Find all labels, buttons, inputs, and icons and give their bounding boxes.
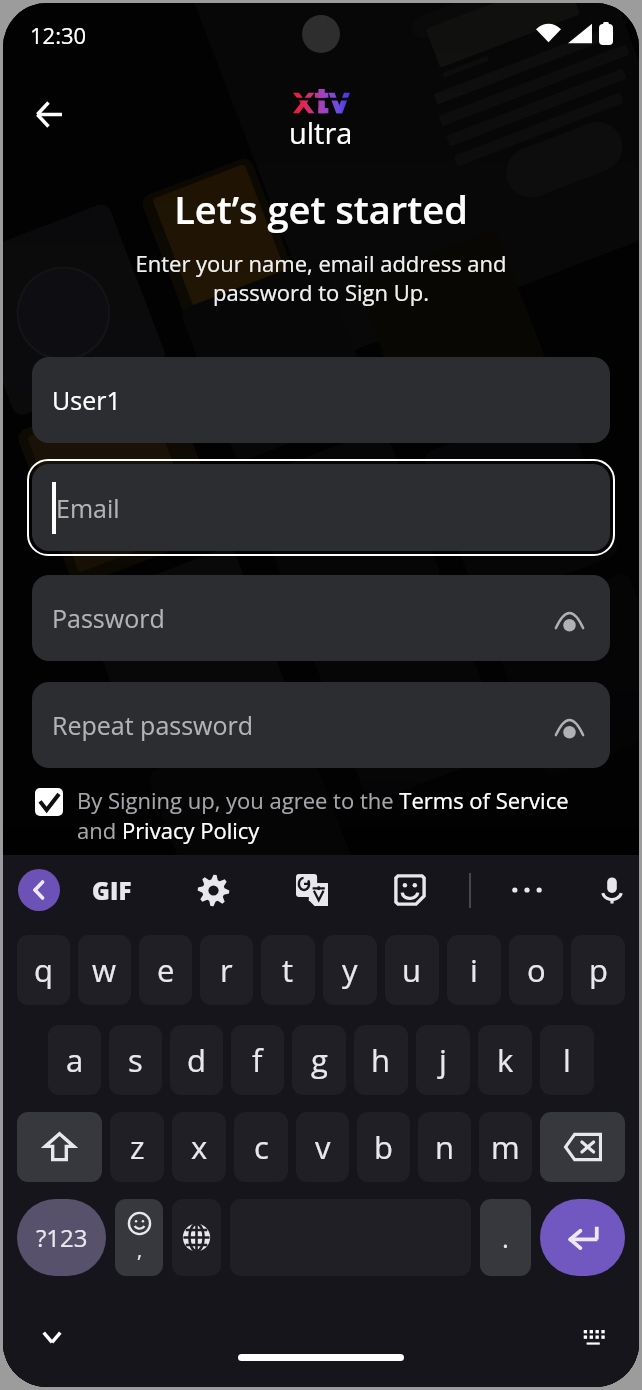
staticText: i (470, 949, 478, 991)
button[interactable]: m (479, 1112, 532, 1182)
staticText: e (157, 949, 175, 991)
staticText: n (435, 1126, 455, 1168)
staticText: d (187, 1039, 206, 1081)
staticText: User1 (52, 383, 121, 417)
button[interactable]: Repeat password (32, 682, 610, 768)
button[interactable]: h (354, 1025, 408, 1095)
button[interactable]: Settings (192, 869, 234, 911)
staticText: ultra (289, 113, 353, 152)
staticText: u (402, 949, 422, 991)
staticText: Repeat password (52, 708, 254, 742)
button[interactable]: q (17, 935, 70, 1005)
staticText: c (254, 1126, 269, 1168)
button[interactable]: ?123 (17, 1199, 106, 1276)
staticText: f (252, 1039, 263, 1081)
staticText: w (92, 949, 117, 991)
button[interactable]: Agree to terms (35, 788, 63, 816)
button[interactable]: Switch keyboard (577, 1319, 613, 1355)
button[interactable]: b (357, 1112, 410, 1182)
staticText: g (311, 1039, 328, 1081)
button[interactable]: f (231, 1025, 284, 1095)
button[interactable]: Email (32, 464, 610, 551)
staticText: GIF (92, 874, 132, 907)
button[interactable]: Translate (291, 869, 333, 911)
button[interactable]: Emoji (115, 1199, 163, 1276)
staticText: t (282, 949, 294, 991)
button[interactable]: x (172, 1112, 226, 1182)
button[interactable]: Enter (540, 1199, 625, 1276)
button[interactable]: User1 (32, 357, 610, 443)
button[interactable]: y (323, 935, 377, 1005)
button[interactable]: k (478, 1025, 532, 1095)
button[interactable]: r (200, 935, 253, 1005)
button[interactable]: Previous field (18, 869, 60, 911)
staticText: z (130, 1126, 145, 1168)
staticText: Email (56, 491, 120, 525)
staticText: s (128, 1039, 143, 1081)
button[interactable]: l (540, 1025, 594, 1095)
staticText: By Signing up, you agree to the Terms of… (77, 785, 593, 846)
staticText: v (315, 1126, 331, 1168)
button[interactable]: i (447, 935, 501, 1005)
button[interactable]: c (234, 1112, 288, 1182)
button[interactable]: Hide keyboard (34, 1319, 70, 1355)
staticText: Password (52, 601, 165, 635)
staticText: Enter your name, email address and passw… (3, 248, 639, 307)
staticText: 12:30 (30, 20, 87, 50)
button[interactable]: j (416, 1025, 470, 1095)
staticText: y (342, 949, 358, 991)
button[interactable]: n (418, 1112, 471, 1182)
button[interactable]: s (109, 1025, 162, 1095)
button[interactable]: Shift (17, 1112, 102, 1182)
staticText: x (191, 1126, 208, 1168)
button[interactable]: p (571, 935, 625, 1005)
staticText: m (491, 1126, 520, 1168)
staticText: Let’s get started (3, 183, 639, 235)
button[interactable]: . (480, 1199, 531, 1276)
button[interactable]: z (110, 1112, 164, 1182)
button[interactable]: a (48, 1025, 101, 1095)
button[interactable]: Voice input (591, 869, 633, 911)
button[interactable]: Stickers (389, 869, 431, 911)
staticText: k (497, 1039, 514, 1081)
button[interactable]: d (170, 1025, 223, 1095)
button[interactable]: e (139, 935, 192, 1005)
button[interactable]: Backspace (540, 1112, 625, 1182)
button[interactable]: More options (506, 869, 548, 911)
button[interactable]: GIF (86, 868, 138, 912)
staticText: j (439, 1039, 447, 1081)
staticText: l (563, 1039, 571, 1081)
button[interactable]: t (261, 935, 315, 1005)
staticText: q (34, 949, 53, 991)
staticText: , (137, 1236, 143, 1263)
staticText: b (374, 1126, 393, 1168)
button[interactable]: v (296, 1112, 349, 1182)
staticText: r (220, 949, 233, 991)
staticText: a (66, 1039, 84, 1081)
button[interactable]: Back (22, 87, 76, 141)
button[interactable]: g (292, 1025, 346, 1095)
staticText: ?123 (36, 1221, 88, 1254)
button[interactable]: Change language (172, 1199, 221, 1276)
staticText: p (589, 949, 608, 991)
staticText: h (371, 1039, 391, 1081)
button[interactable]: u (385, 935, 439, 1005)
button[interactable]: w (78, 935, 131, 1005)
staticText: . (502, 1220, 509, 1255)
button[interactable]: Password (32, 575, 610, 661)
button[interactable]: o (509, 935, 563, 1005)
staticText: o (527, 949, 546, 991)
